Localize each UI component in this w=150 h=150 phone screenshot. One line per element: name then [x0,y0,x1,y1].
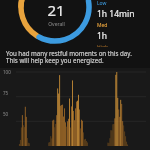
button[interactable]: Overall score 21 [0,0,150,47]
staticText: 21 [47,0,65,20]
staticText: 1h 14min [97,8,135,20]
staticText: You had many restful moments on this day… [6,49,144,65]
staticText: High [97,44,109,47]
button[interactable]: 100 [0,68,150,150]
staticText: Low [97,0,107,7]
staticText: Med [97,22,108,29]
staticText: 75 [3,90,9,96]
button[interactable]: You had many restful moments on this day… [6,49,144,65]
staticText: Overall [48,21,65,28]
staticText: 100 [3,69,11,75]
button[interactable]: Low [97,0,135,47]
staticText: 50 [3,111,9,117]
staticText: 1h [97,30,108,42]
